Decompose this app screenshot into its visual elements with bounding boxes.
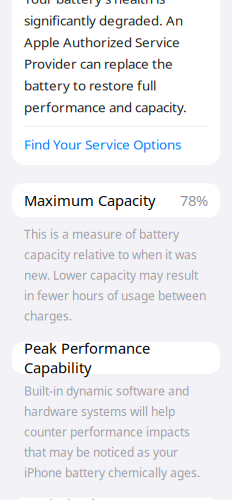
staticText: Find Your Service Options bbox=[24, 135, 181, 153]
staticText: 78% bbox=[180, 190, 208, 210]
staticText: Peak Performance Capability bbox=[24, 338, 150, 377]
button[interactable]: Find Your Service Options bbox=[24, 135, 208, 153]
staticText: Your battery's health is significantly d… bbox=[24, 0, 187, 116]
staticText: Built-in dynamic software and hardware s… bbox=[24, 383, 200, 481]
staticText: Optimized Battery Charging bbox=[24, 495, 148, 500]
staticText: This is a measure of battery capacity re… bbox=[24, 226, 206, 324]
staticText: Maximum Capacity bbox=[24, 190, 155, 210]
button[interactable]: Optimized Battery Charging bbox=[12, 498, 220, 500]
